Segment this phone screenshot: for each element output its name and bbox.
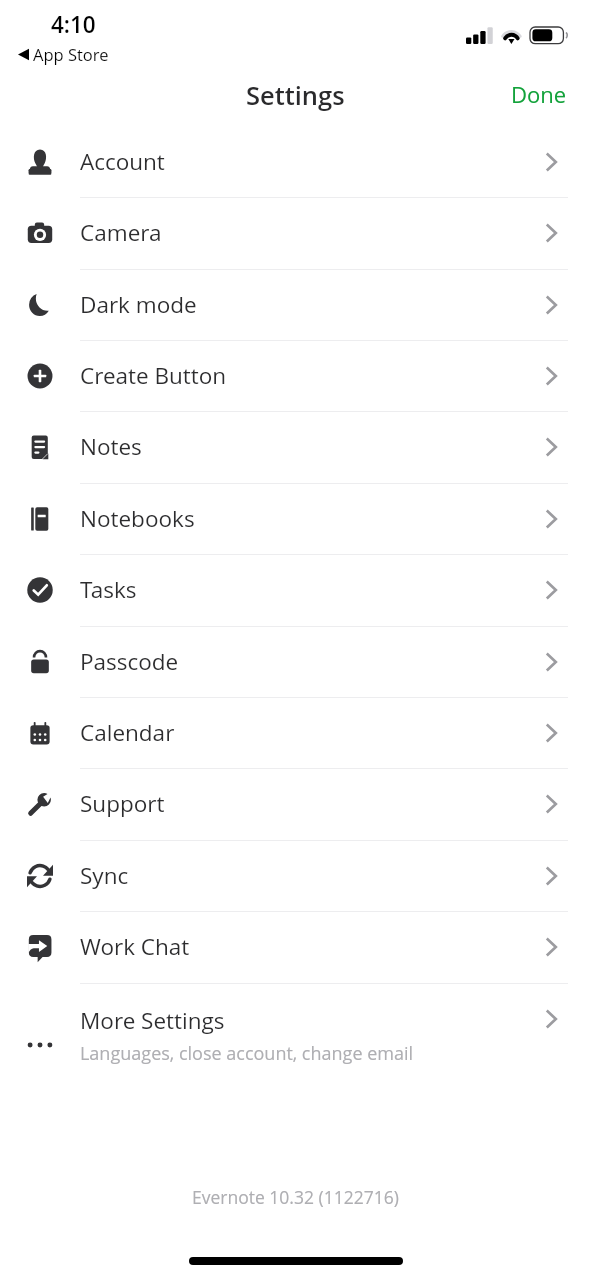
button[interactable]: Camera [0,197,591,268]
staticText: Account [80,146,165,177]
staticText: App Store [33,43,109,65]
staticText: Camera [80,217,162,248]
staticText: Passcode [80,646,179,677]
button[interactable]: Passcode [0,626,591,697]
button[interactable]: Support [0,768,591,839]
button[interactable]: Notebooks [0,483,591,554]
button[interactable]: Sync [0,840,591,911]
button[interactable]: Work Chat [0,911,591,982]
staticText: 4:10 [51,9,96,40]
staticText: Support [80,788,165,819]
staticText: Work Chat [80,931,190,962]
staticText: Languages, close account, change email [80,1041,414,1066]
staticText: Settings [246,78,345,113]
button[interactable]: Account [0,126,591,197]
staticText: Notes [80,431,142,462]
button[interactable]: Create Button [0,340,591,411]
button[interactable]: Done [487,67,591,121]
staticText: More Settings [80,1005,225,1036]
button[interactable]: Dark mode [0,269,591,340]
staticText: Done [511,79,567,109]
staticText: Tasks [80,574,137,605]
button[interactable]: Tasks [0,554,591,625]
staticText: Dark mode [80,289,197,320]
button[interactable]: Calendar [0,697,591,768]
button[interactable]: Notes [0,411,591,482]
staticText: Sync [80,860,129,891]
staticText: Create Button [80,360,227,391]
staticText: Calendar [80,717,175,748]
staticText: Evernote 10.32 (1122716) [192,1185,399,1209]
staticText: Notebooks [80,503,195,534]
button[interactable]: More Settings [0,983,591,1054]
